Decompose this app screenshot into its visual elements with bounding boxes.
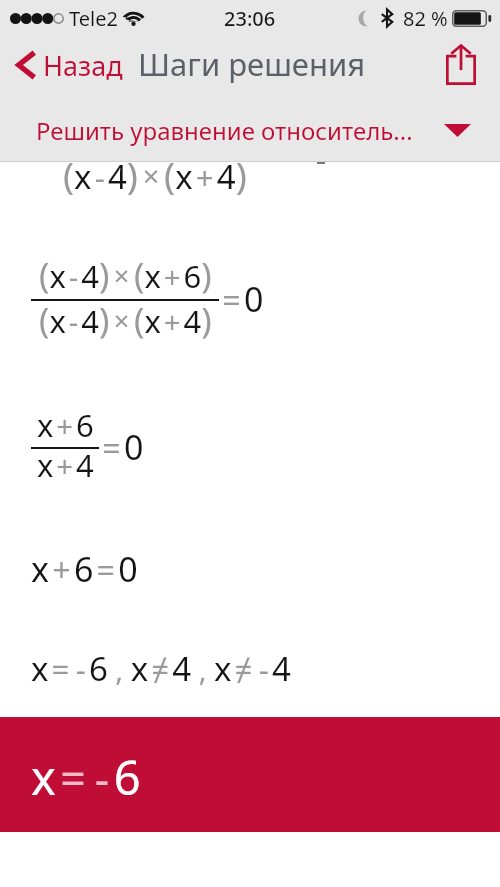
staticText: x + 6 = 0 bbox=[31, 546, 138, 592]
staticText: x = - 6 , x ≠ 4 , x ≠ - 4 bbox=[31, 646, 291, 691]
staticText: Назад bbox=[43, 47, 123, 84]
staticText: = 0 bbox=[99, 424, 144, 470]
staticText: 82 % bbox=[403, 5, 448, 32]
staticText: 23:06 bbox=[224, 5, 276, 32]
staticText: x = - 6 bbox=[31, 745, 141, 809]
staticText: x + 6 bbox=[37, 404, 94, 446]
staticText: Решить уравнение относитель... bbox=[36, 114, 413, 147]
staticText: (x - 4) × (x + 4) bbox=[63, 149, 247, 199]
button[interactable]: Назад bbox=[4, 45, 130, 94]
staticText: = 0 bbox=[219, 276, 264, 322]
staticText: Шаги решения bbox=[138, 43, 366, 85]
staticText: (x - 4) × (x + 6) bbox=[39, 251, 212, 298]
button[interactable]: Share bbox=[432, 39, 490, 90]
staticText: (x - 4) × (x + 4) bbox=[39, 296, 212, 343]
staticText: x + 4 bbox=[37, 444, 94, 486]
staticText: Tele2 bbox=[69, 5, 118, 32]
button[interactable]: x = - 6 bbox=[0, 717, 500, 832]
button[interactable]: Решить уравнение относитель... bbox=[0, 100, 500, 162]
